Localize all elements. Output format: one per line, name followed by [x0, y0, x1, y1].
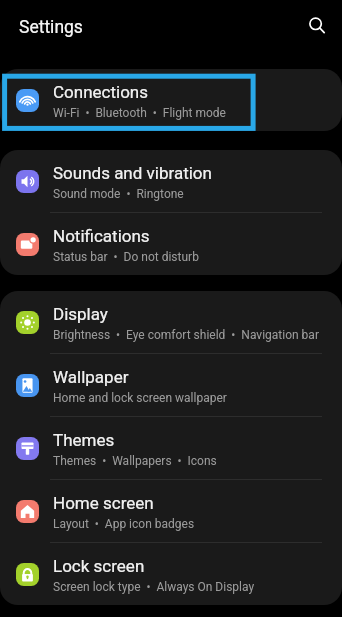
- button[interactable]: Sounds and vibration: [0, 150, 342, 212]
- button[interactable]: Lock screen: [0, 543, 342, 605]
- staticText: Themes • Wallpapers • Icons: [53, 454, 217, 468]
- staticText: Layout • App icon badges: [53, 517, 195, 531]
- button[interactable]: Search: [300, 8, 332, 40]
- button[interactable]: Themes: [0, 417, 342, 479]
- staticText: Settings: [19, 17, 83, 38]
- staticText: Lock screen: [53, 556, 145, 576]
- staticText: Notifications: [53, 226, 150, 246]
- staticText: Display: [53, 304, 108, 324]
- staticText: Screen lock type • Always On Display: [53, 580, 255, 594]
- button[interactable]: Wallpaper: [0, 354, 342, 416]
- staticText: Themes: [53, 430, 115, 450]
- staticText: Wi-Fi • Bluetooth • Flight mode: [53, 106, 226, 120]
- staticText: Brightness • Eye comfort shield • Naviga…: [53, 328, 319, 342]
- staticText: Wallpaper: [53, 367, 129, 387]
- staticText: Status bar • Do not disturb: [53, 250, 199, 264]
- staticText: Sound mode • Ringtone: [53, 187, 184, 201]
- staticText: Connections: [53, 82, 149, 102]
- staticText: Home and lock screen wallpaper: [53, 391, 227, 405]
- staticText: Home screen: [53, 493, 154, 513]
- staticText: Sounds and vibration: [53, 163, 212, 183]
- button[interactable]: Notifications: [0, 213, 342, 275]
- button[interactable]: Display: [0, 291, 342, 353]
- button[interactable]: Home screen: [0, 480, 342, 542]
- button[interactable]: Connections: [0, 69, 342, 131]
